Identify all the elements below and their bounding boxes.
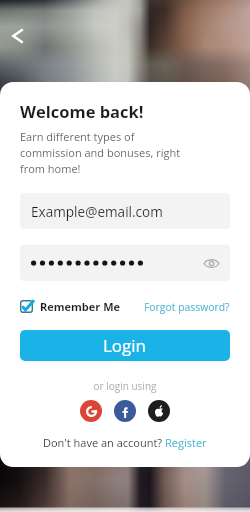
staticText: Example@email.com [31, 202, 163, 221]
staticText: Welcome back! [20, 100, 144, 122]
staticText: or login using [20, 379, 230, 393]
staticText: Register [165, 435, 207, 450]
button[interactable]: Forgot password? [144, 300, 230, 314]
button[interactable]: Sign in with Apple [148, 400, 170, 422]
button[interactable]: Example@email.com [20, 193, 230, 229]
staticText: Forgot password? [144, 300, 230, 314]
button[interactable]: Show password [20, 245, 230, 281]
button[interactable]: Show password [201, 253, 221, 273]
staticText: Earn different types of commission and b… [20, 129, 185, 176]
button[interactable]: Register [165, 435, 207, 450]
button[interactable]: Sign in with Facebook [114, 400, 136, 422]
staticText: Remember Me [40, 299, 121, 314]
button[interactable]: Remember Me [20, 299, 121, 314]
button[interactable]: Login [20, 330, 230, 361]
button[interactable]: Back [3, 21, 32, 50]
staticText: Don't have an account? [43, 435, 165, 450]
staticText: Login [103, 334, 147, 357]
button[interactable]: Sign in with Google [80, 400, 102, 422]
